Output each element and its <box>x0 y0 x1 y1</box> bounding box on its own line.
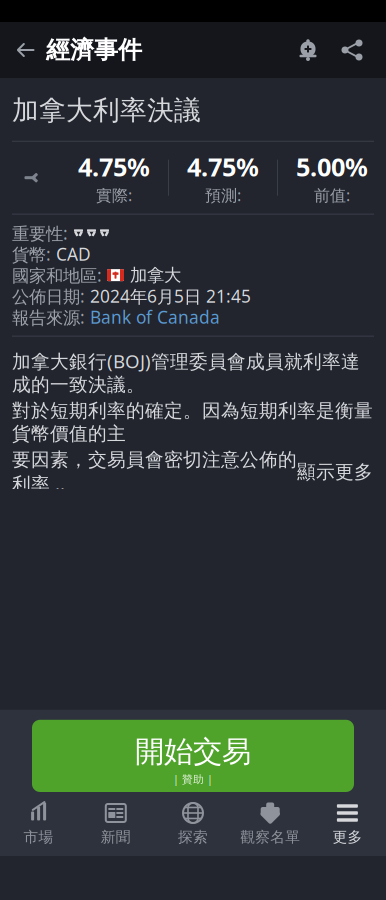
staticText: 國家和地區: <box>12 264 102 287</box>
staticText: 公佈日期: <box>12 285 85 308</box>
staticText: 5.00% <box>296 150 368 183</box>
button[interactable]: Back <box>0 28 46 72</box>
staticText: CAD <box>56 243 91 266</box>
staticText: 開始交易 <box>135 734 251 770</box>
button[interactable]: 探索 <box>154 796 232 850</box>
staticText: 前值: <box>314 184 350 206</box>
button[interactable]: 開始交易 <box>0 720 386 792</box>
staticText: 實際: <box>96 184 132 206</box>
button[interactable]: 加拿大銀行(BOJ)管理委員會成員就利率達成的一致決議。 <box>0 337 386 508</box>
staticText: 加拿大 <box>130 264 181 286</box>
button[interactable]: 新聞 <box>77 796 154 850</box>
staticText: 經濟事件 <box>46 35 142 65</box>
staticText: 重要性: <box>12 222 68 245</box>
staticText: 貨幣: <box>12 243 51 266</box>
button[interactable]: 更多 <box>309 796 386 850</box>
staticText: 要因素，交易員會密切注意公佈的利率 .. <box>12 448 297 496</box>
staticText: 4.75% <box>187 150 259 183</box>
staticText: 探索 <box>178 828 208 846</box>
button[interactable]: Alerts <box>286 28 330 72</box>
staticText: 2024年6月5日 21:45 <box>90 285 251 308</box>
staticText: 預測: <box>205 184 241 206</box>
staticText: 加拿大銀行(BOJ)管理委員會成員就利率達成的一致決議。 <box>12 349 360 396</box>
staticText: 新聞 <box>101 828 131 846</box>
button[interactable]: Share <box>330 28 374 72</box>
staticText: 顯示更多 <box>297 461 373 483</box>
staticText: 更多 <box>332 828 362 846</box>
staticText: 加拿大利率決議 <box>12 94 201 127</box>
button[interactable]: 經濟事件 <box>46 23 142 77</box>
staticText: 對於短期利率的確定。因為短期利率是衡量貨幣價值的主 <box>12 399 373 445</box>
staticText: 報告來源: <box>12 306 85 329</box>
staticText: 觀察名單 <box>240 828 300 846</box>
staticText: 市場 <box>24 828 54 846</box>
button[interactable]: 市場 <box>0 796 77 850</box>
staticText: | 贊助 | <box>173 772 213 786</box>
staticText: 4.75% <box>78 150 150 183</box>
button[interactable]: 觀察名單 <box>232 796 309 850</box>
staticText: Bank of Canada <box>90 306 220 329</box>
button[interactable]: Bank of Canada <box>90 306 220 329</box>
